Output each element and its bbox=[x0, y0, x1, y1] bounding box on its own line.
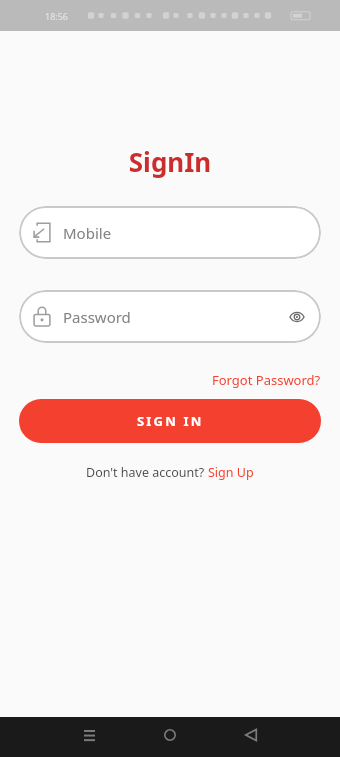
staticText: 18:56 bbox=[45, 10, 69, 22]
staticText: SIGN IN bbox=[137, 412, 204, 430]
button[interactable]: Mobile bbox=[19, 206, 321, 259]
button[interactable]: SIGN IN bbox=[19, 399, 321, 443]
staticText: Password bbox=[63, 307, 131, 327]
other: Show password bbox=[289, 309, 305, 325]
button[interactable]: Back bbox=[229, 717, 273, 757]
button[interactable]: Forgot Password? bbox=[212, 371, 321, 389]
staticText: Don't have account? bbox=[86, 464, 208, 481]
button[interactable]: Recents bbox=[67, 717, 111, 757]
staticText: Sign Up bbox=[208, 464, 254, 481]
staticText: Mobile bbox=[63, 223, 112, 243]
button[interactable]: Home bbox=[148, 717, 192, 757]
button[interactable]: Password bbox=[19, 290, 321, 343]
staticText: SignIn bbox=[0, 144, 340, 179]
staticText: Forgot Password? bbox=[212, 371, 321, 389]
button[interactable]: Sign Up bbox=[208, 464, 254, 481]
